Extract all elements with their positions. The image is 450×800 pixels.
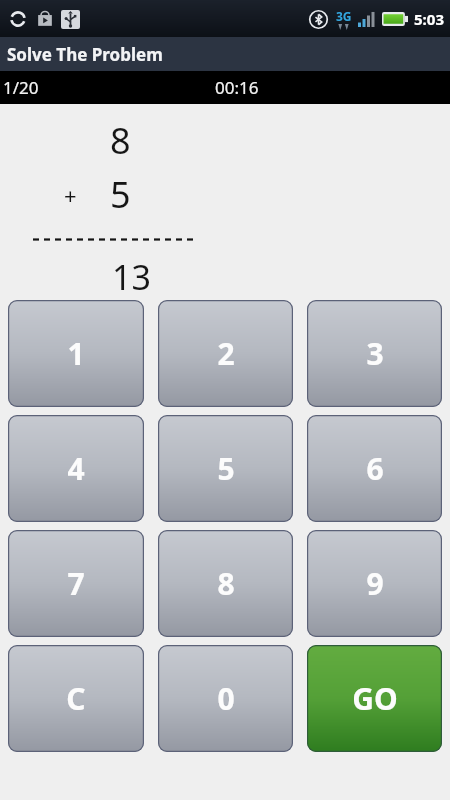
button[interactable]: GO bbox=[307, 645, 442, 752]
staticText: 8 bbox=[110, 116, 131, 165]
staticText: 4 bbox=[67, 448, 85, 489]
staticText: 13 bbox=[112, 254, 151, 300]
staticText: 5:03 bbox=[414, 9, 444, 29]
staticText: 3 bbox=[366, 333, 384, 374]
staticText: GO bbox=[352, 678, 398, 719]
button[interactable]: 8 bbox=[158, 530, 293, 637]
staticText: 00:16 bbox=[215, 76, 259, 99]
button[interactable]: C bbox=[8, 645, 144, 752]
button[interactable]: 6 bbox=[307, 415, 442, 522]
button[interactable]: 7 bbox=[8, 530, 144, 637]
button[interactable]: 0 bbox=[158, 645, 293, 752]
staticText: 1/20 bbox=[3, 76, 39, 99]
button[interactable]: 4 bbox=[8, 415, 144, 522]
button[interactable]: 5 bbox=[158, 415, 293, 522]
staticText: 0 bbox=[217, 678, 235, 719]
staticText: + bbox=[64, 180, 77, 210]
staticText: 5 bbox=[217, 448, 235, 489]
staticText: 6 bbox=[366, 448, 384, 489]
staticText: 7 bbox=[67, 563, 85, 604]
staticText: C bbox=[66, 678, 86, 719]
staticText: 9 bbox=[366, 563, 384, 604]
staticText: 1 bbox=[67, 333, 85, 374]
button[interactable]: 9 bbox=[307, 530, 442, 637]
button[interactable]: 2 bbox=[158, 300, 293, 407]
staticText: 3G bbox=[336, 8, 352, 24]
staticText: 8 bbox=[217, 563, 235, 604]
button[interactable]: 1 bbox=[8, 300, 144, 407]
staticText: 2 bbox=[217, 333, 235, 374]
button[interactable]: 3 bbox=[307, 300, 442, 407]
staticText: 5 bbox=[110, 170, 131, 219]
staticText: Solve The Problem bbox=[7, 43, 163, 66]
